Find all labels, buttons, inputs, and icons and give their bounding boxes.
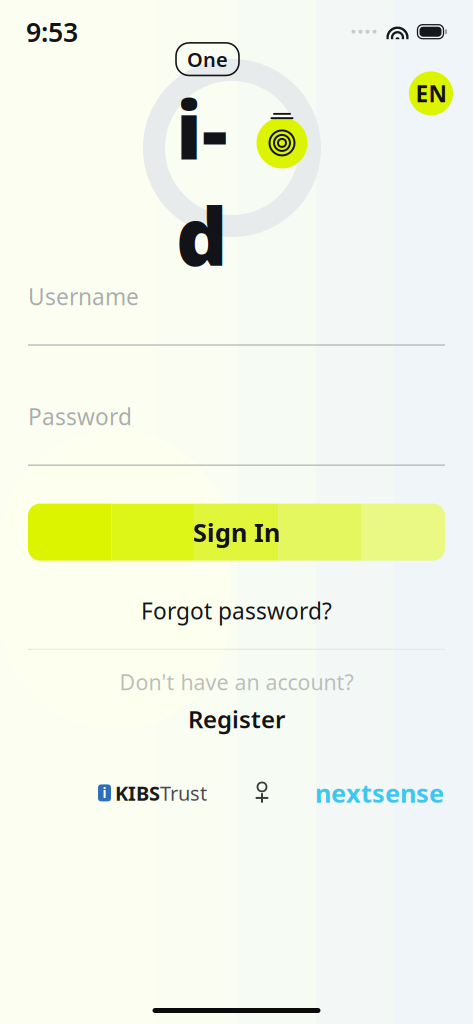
staticText: Trust [160, 780, 207, 806]
staticText: id [176, 75, 227, 288]
button[interactable]: Sign in with fingerprint [256, 117, 307, 168]
staticText: 9:53 [26, 14, 78, 49]
staticText: KIBS [115, 780, 160, 806]
staticText: Username [28, 281, 139, 311]
staticText: i [102, 784, 106, 802]
staticText: Register [188, 703, 285, 735]
button[interactable]: Don't have an account? [0, 661, 473, 742]
staticText: Sign In [193, 515, 280, 549]
staticText: One [187, 46, 228, 72]
staticText: Password [28, 401, 132, 432]
button[interactable]: Forgot password? [0, 585, 473, 637]
staticText: Don't have an account? [119, 668, 353, 696]
button[interactable]: Sign In [0, 504, 473, 561]
staticText: nextsense [315, 776, 444, 810]
staticText: EN [415, 78, 446, 108]
staticText: Forgot password? [141, 596, 332, 626]
button[interactable]: Language English [409, 71, 453, 115]
